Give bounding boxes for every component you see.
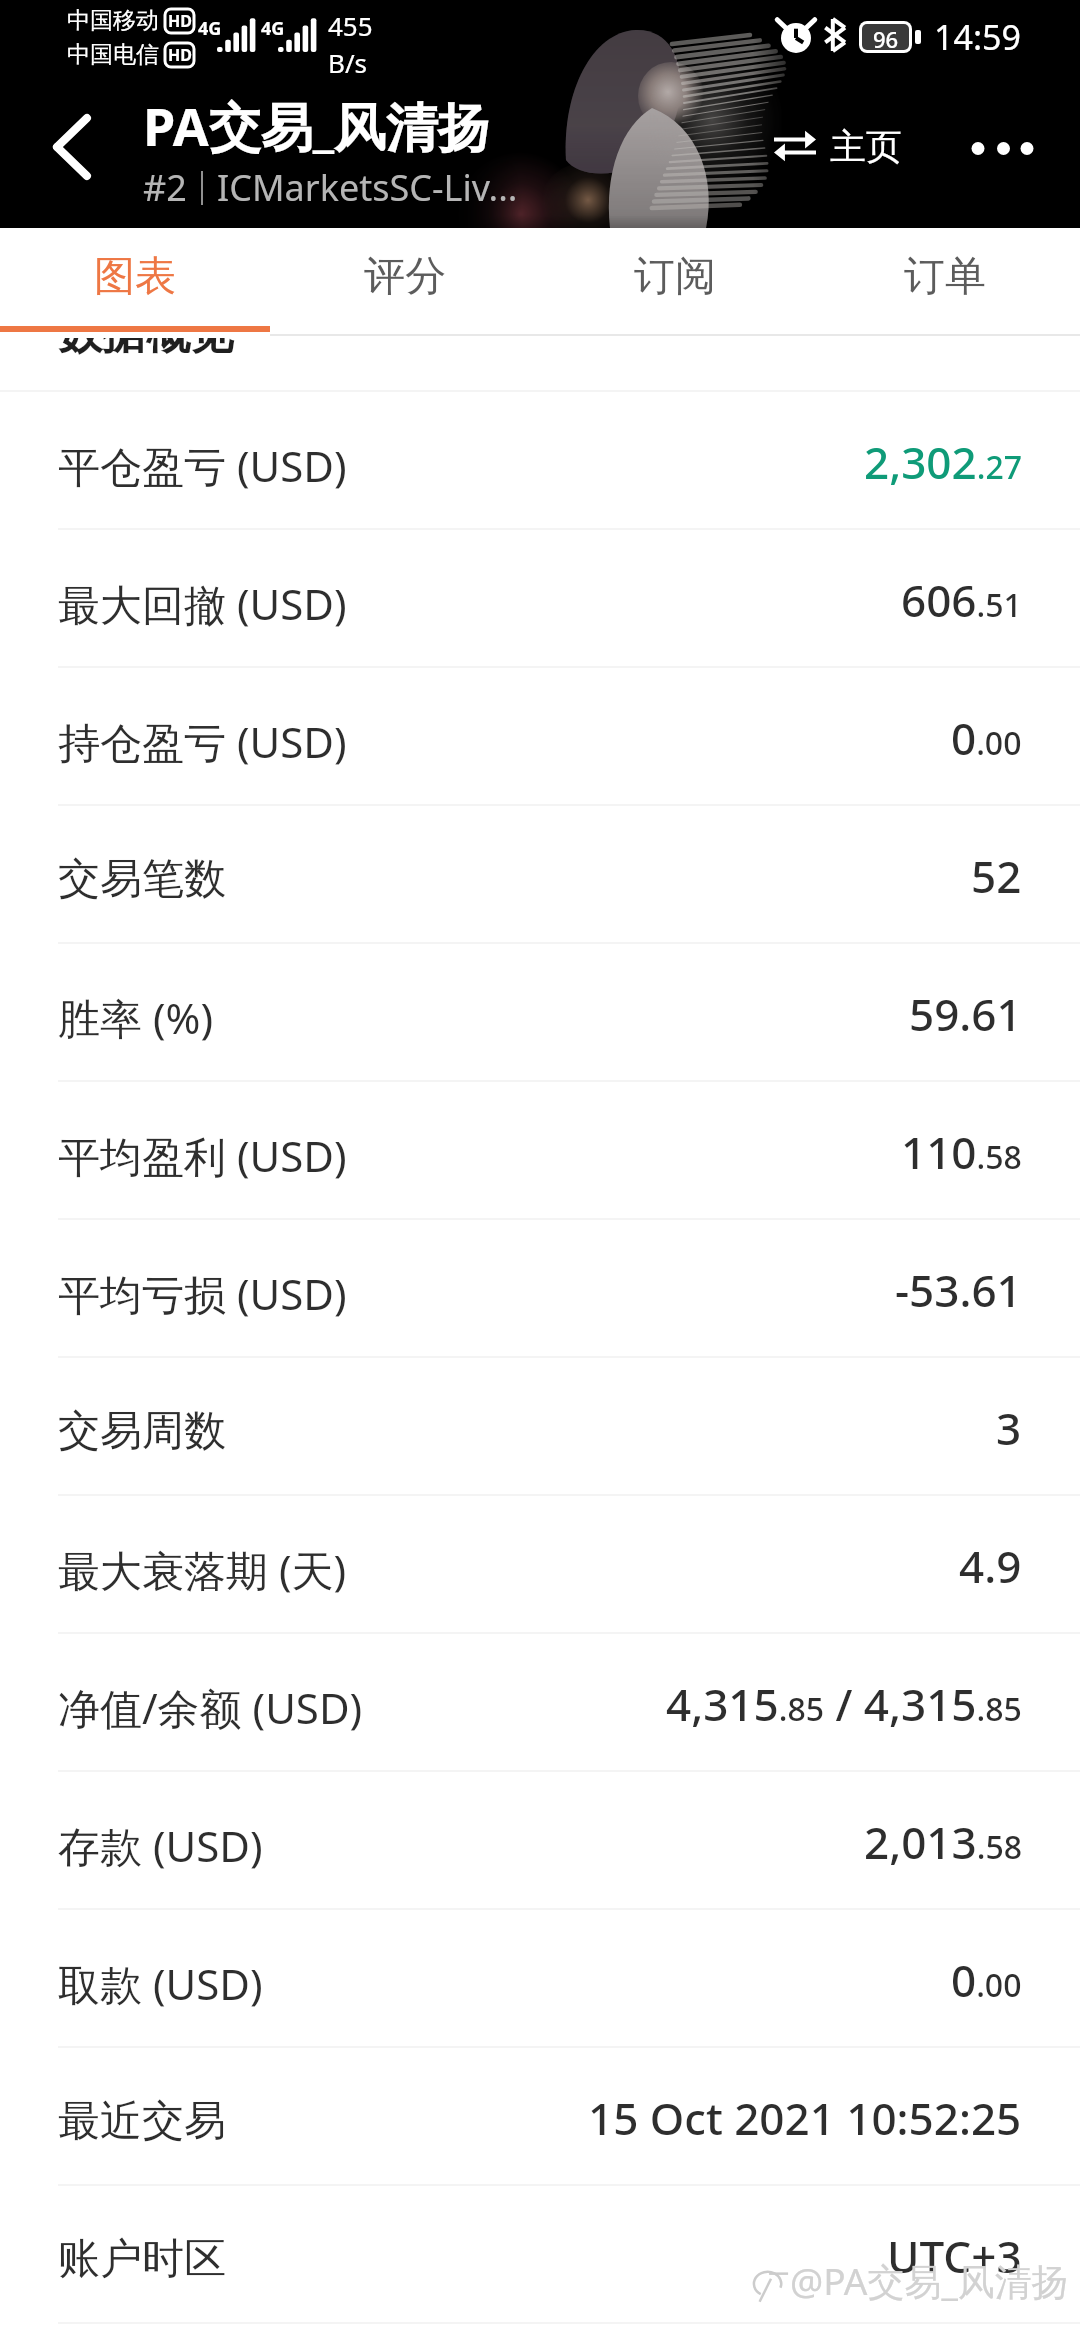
staticText: 2,302.27: [864, 432, 1022, 492]
staticText: 4,315.85 / 4,315.85: [666, 1674, 1022, 1734]
staticText: UTC+3: [887, 2226, 1022, 2286]
staticText: 中国移动: [67, 6, 159, 35]
staticText: 图表: [94, 251, 176, 303]
button[interactable]: 最近交易: [0, 2048, 1080, 2186]
button[interactable]: 存款 (USD): [0, 1772, 1080, 1910]
button[interactable]: 主页: [766, 117, 910, 175]
staticText: 4G: [198, 16, 222, 41]
staticText: 平仓盈亏 (USD): [58, 437, 347, 494]
button[interactable]: 净值/余额 (USD): [0, 1634, 1080, 1772]
staticText: 455: [328, 8, 373, 43]
button[interactable]: 交易周数: [0, 1358, 1080, 1496]
staticText: 评分: [364, 251, 446, 303]
button[interactable]: 胜率 (%): [0, 944, 1080, 1082]
button[interactable]: 最大回撤 (USD): [0, 530, 1080, 668]
staticText: 3: [996, 1398, 1022, 1458]
staticText: 4G: [261, 16, 285, 41]
staticText: 平均亏损 (USD): [58, 1265, 347, 1322]
button[interactable]: More options: [940, 100, 1050, 200]
button[interactable]: 最大衰落期 (天): [0, 1496, 1080, 1634]
staticText: 最大回撤 (USD): [58, 575, 347, 632]
button[interactable]: 取款 (USD): [0, 1910, 1080, 2048]
staticText: @PA交易_风清扬: [790, 2255, 1069, 2306]
staticText: 606.51: [901, 570, 1022, 630]
staticText: 交易周数: [58, 1405, 226, 1458]
staticText: -53.61: [895, 1260, 1022, 1320]
staticText: 取款 (USD): [58, 1955, 263, 2012]
button[interactable]: 评分: [270, 228, 540, 326]
staticText: HD: [168, 10, 192, 32]
staticText: 存款 (USD): [58, 1817, 263, 1874]
staticText: 账户时区: [58, 2233, 226, 2286]
button[interactable]: 订单: [810, 228, 1080, 326]
button[interactable]: 持仓盈亏 (USD): [0, 668, 1080, 806]
button[interactable]: 平均亏损 (USD): [0, 1220, 1080, 1358]
button[interactable]: Back: [22, 82, 122, 192]
staticText: 0.00: [951, 1950, 1022, 2010]
staticText: 110.58: [901, 1122, 1022, 1182]
staticText: PA交易_风清扬: [143, 90, 491, 161]
staticText: ICMarketsSC-Liv...: [217, 163, 518, 212]
button[interactable]: 图表: [0, 228, 270, 326]
staticText: 数据概览: [58, 336, 234, 361]
staticText: 主页: [830, 124, 902, 169]
staticText: 最大衰落期 (天): [58, 1541, 347, 1598]
staticText: #2: [143, 163, 187, 212]
staticText: 持仓盈亏 (USD): [58, 713, 347, 770]
staticText: 胜率 (%): [58, 989, 214, 1046]
button[interactable]: 交易笔数: [0, 806, 1080, 944]
staticText: 2,013.58: [864, 1812, 1022, 1872]
staticText: B/s: [328, 45, 368, 80]
staticText: 52: [971, 846, 1022, 906]
staticText: 最近交易: [58, 2095, 226, 2148]
staticText: 交易笔数: [58, 853, 226, 906]
button[interactable]: 平仓盈亏 (USD): [0, 392, 1080, 530]
staticText: 59.61: [909, 984, 1022, 1044]
staticText: HD: [168, 44, 192, 66]
staticText: 4.9: [959, 1536, 1022, 1596]
button[interactable]: 平均盈利 (USD): [0, 1082, 1080, 1220]
staticText: 0.00: [951, 708, 1022, 768]
staticText: 平均盈利 (USD): [58, 1127, 347, 1184]
button[interactable]: 订阅: [540, 228, 810, 326]
staticText: 96: [873, 24, 899, 50]
button[interactable]: 账户时区: [0, 2186, 1080, 2324]
staticText: 中国电信: [67, 40, 159, 69]
staticText: 订单: [904, 251, 986, 303]
staticText: 14:59: [934, 14, 1021, 60]
staticText: 15 Oct 2021 10:52:25: [588, 2088, 1022, 2148]
staticText: 净值/余额 (USD): [58, 1679, 363, 1736]
staticText: 订阅: [634, 251, 716, 303]
